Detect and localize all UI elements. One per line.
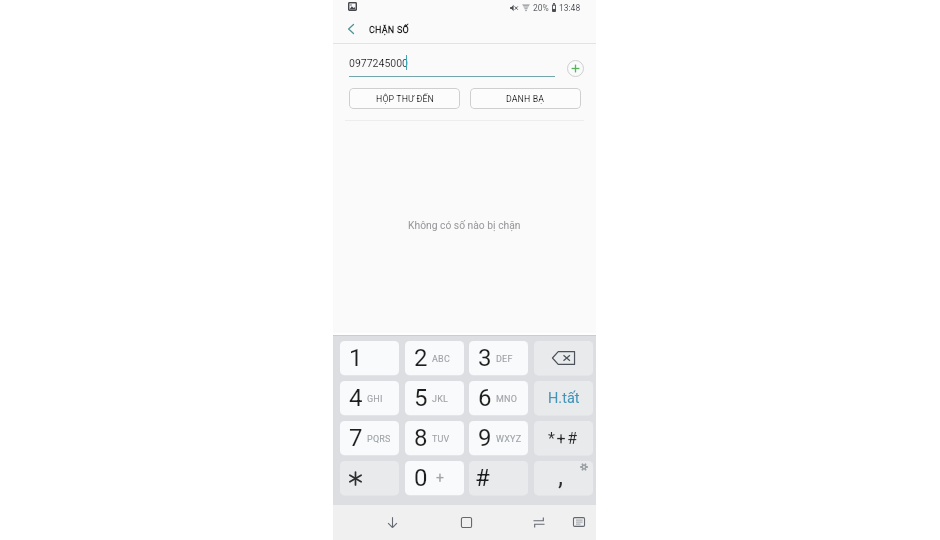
button[interactable]: 1 bbox=[340, 341, 399, 375]
button[interactable]: DANH BẠ bbox=[470, 88, 581, 109]
staticText: PQRS bbox=[367, 434, 391, 445]
staticText: 20% bbox=[533, 3, 549, 13]
staticText: 13:48 bbox=[559, 3, 581, 13]
button[interactable]: 6 MNO bbox=[469, 381, 528, 415]
staticText: # bbox=[475, 464, 490, 492]
button[interactable]: Home bbox=[454, 510, 478, 534]
button[interactable]: Star bbox=[340, 461, 399, 495]
staticText: CHẶN SỐ bbox=[369, 25, 409, 36]
staticText: 9 bbox=[478, 424, 492, 452]
button[interactable]: Hash bbox=[469, 461, 528, 495]
button[interactable]: HỘP THƯ ĐẾN bbox=[349, 88, 460, 109]
staticText: 0 bbox=[414, 464, 428, 492]
staticText: Không có số nào bị chặn bbox=[408, 219, 521, 231]
staticText: 4 bbox=[349, 384, 363, 412]
button[interactable]: Hide keyboard bbox=[380, 510, 404, 534]
button[interactable]: 0 plus bbox=[405, 461, 464, 495]
button[interactable]: Keyboard settings bbox=[567, 510, 591, 534]
button[interactable]: Add number bbox=[565, 58, 585, 78]
staticText: 5 bbox=[414, 384, 428, 412]
staticText: MNO bbox=[496, 394, 518, 405]
button[interactable]: Back bbox=[338, 19, 362, 43]
staticText: DEF bbox=[496, 354, 513, 365]
staticText: 7 bbox=[349, 424, 363, 452]
button[interactable]: 9 WXYZ bbox=[469, 421, 528, 455]
button[interactable]: Comma, keyboard settings bbox=[534, 461, 593, 495]
button[interactable]: Backspace bbox=[534, 341, 593, 375]
button[interactable]: 2 ABC bbox=[405, 341, 464, 375]
button[interactable]: Symbols bbox=[534, 421, 593, 455]
staticText: DANH BẠ bbox=[506, 94, 545, 104]
staticText: *+# bbox=[548, 429, 579, 448]
staticText: , bbox=[558, 461, 564, 491]
staticText: 8 bbox=[414, 424, 428, 452]
button[interactable]: 3 DEF bbox=[469, 341, 528, 375]
staticText: ABC bbox=[432, 354, 450, 365]
button[interactable]: 5 JKL bbox=[405, 381, 464, 415]
staticText: JKL bbox=[432, 394, 449, 405]
staticText: H.tất bbox=[548, 390, 580, 407]
staticText: 1 bbox=[349, 344, 363, 372]
staticText: 2 bbox=[414, 344, 428, 372]
button[interactable]: 8 TUV bbox=[405, 421, 464, 455]
button[interactable]: 4 GHI bbox=[340, 381, 399, 415]
button[interactable]: 7 PQRS bbox=[340, 421, 399, 455]
staticText: GHI bbox=[367, 394, 383, 405]
staticText: 3 bbox=[478, 344, 492, 372]
staticText: TUV bbox=[432, 434, 450, 445]
staticText: HỘP THƯ ĐẾN bbox=[376, 94, 434, 104]
staticText: 0977245000 bbox=[349, 57, 409, 69]
button[interactable]: Hoàn tất bbox=[534, 381, 593, 415]
staticText: 6 bbox=[478, 384, 492, 412]
staticText: WXYZ bbox=[496, 434, 522, 445]
staticText: + bbox=[436, 470, 444, 486]
button[interactable]: Switch input method bbox=[527, 510, 551, 534]
